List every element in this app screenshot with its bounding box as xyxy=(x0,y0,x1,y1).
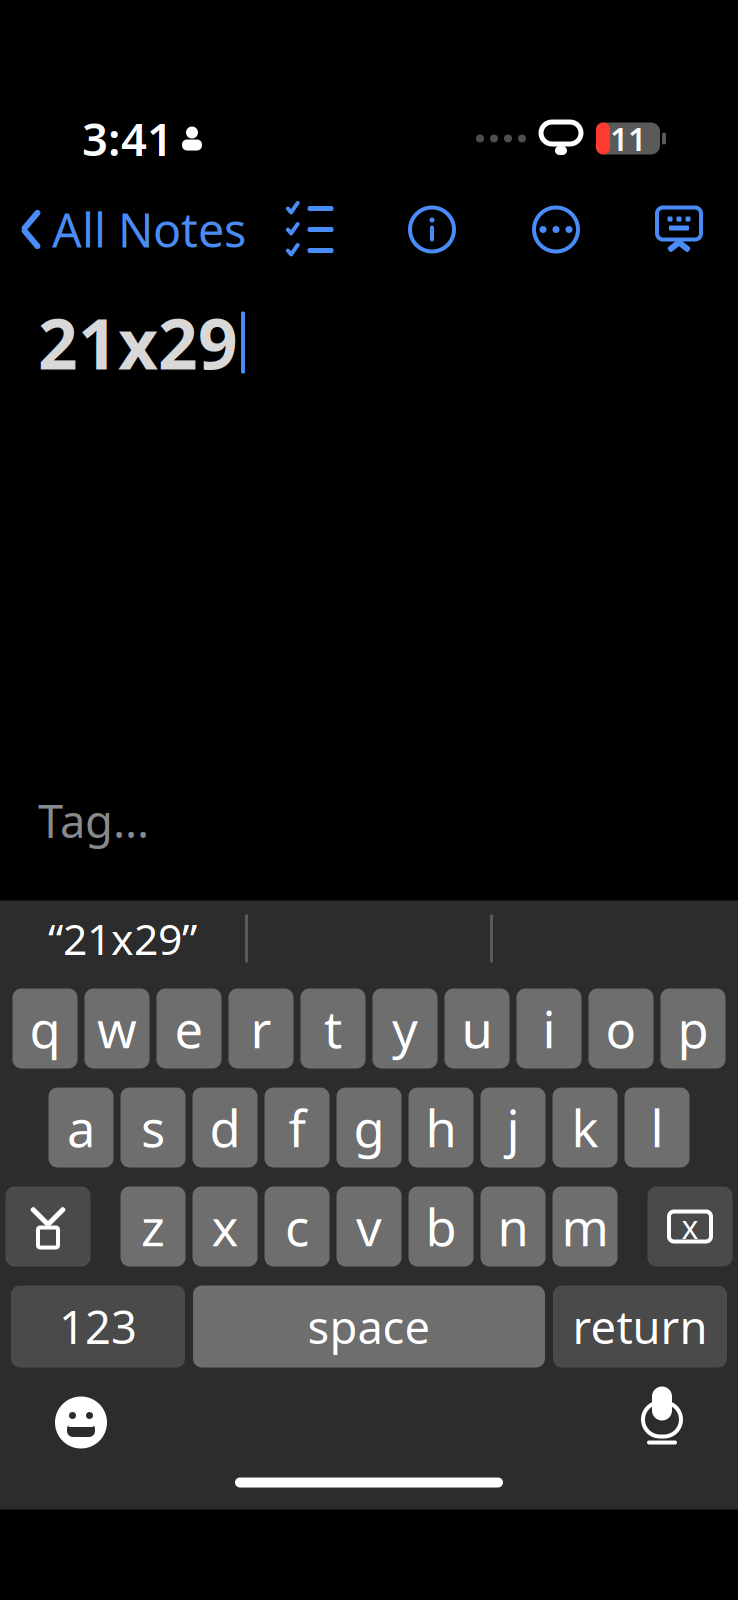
staticText: 3:41 xyxy=(82,108,173,169)
button[interactable]: f xyxy=(264,1087,329,1167)
staticText: 123 xyxy=(59,1296,137,1357)
staticText: space xyxy=(307,1296,430,1357)
staticText: w xyxy=(97,995,137,1062)
button[interactable]: Shift xyxy=(5,1186,90,1266)
button[interactable]: Checklist xyxy=(276,198,344,260)
button[interactable]: g xyxy=(336,1087,401,1167)
staticText: g xyxy=(353,1094,384,1161)
staticText: e xyxy=(174,995,203,1062)
button[interactable]: o xyxy=(588,988,653,1068)
staticText: i xyxy=(542,995,555,1062)
button[interactable]: i xyxy=(516,988,581,1068)
button[interactable]: s xyxy=(120,1087,185,1167)
staticText: z xyxy=(141,1193,165,1260)
staticText: t xyxy=(324,995,342,1062)
button[interactable]: y xyxy=(372,988,437,1068)
button[interactable]: All Notes xyxy=(0,188,246,270)
button[interactable]: l xyxy=(624,1087,689,1167)
button[interactable]: “21x29” xyxy=(0,902,245,974)
button[interactable]: k xyxy=(552,1087,617,1167)
staticText: p xyxy=(677,995,708,1062)
staticText: y xyxy=(392,995,418,1062)
staticText: n xyxy=(497,1193,528,1260)
button[interactable]: n xyxy=(480,1186,545,1266)
button[interactable]: v xyxy=(336,1186,401,1266)
staticText: x xyxy=(681,1205,698,1248)
staticText: d xyxy=(209,1094,240,1161)
button[interactable]: Delete xyxy=(647,1186,732,1266)
button[interactable]: t xyxy=(300,988,365,1068)
button[interactable]: Hide Keyboard xyxy=(644,194,714,264)
button[interactable]: h xyxy=(408,1087,473,1167)
button[interactable]: d xyxy=(192,1087,257,1167)
button[interactable]: j xyxy=(480,1087,545,1167)
staticText: v xyxy=(356,1193,382,1260)
button[interactable]: More xyxy=(520,193,592,265)
staticText: h xyxy=(425,1094,456,1161)
staticText: u xyxy=(461,995,492,1062)
staticText: All Notes xyxy=(52,198,246,260)
staticText: 21x29 xyxy=(38,296,238,389)
staticText: 11 xyxy=(610,117,646,160)
button[interactable]: u xyxy=(444,988,509,1068)
button[interactable]: z xyxy=(120,1186,185,1266)
staticText: Tag... xyxy=(38,790,149,850)
button[interactable]: Emoji xyxy=(40,1381,122,1463)
button[interactable]: b xyxy=(408,1186,473,1266)
button[interactable]: p xyxy=(660,988,725,1068)
staticText: m xyxy=(561,1193,608,1260)
staticText: return xyxy=(572,1296,707,1357)
staticText: r xyxy=(250,995,271,1062)
staticText: q xyxy=(29,995,60,1062)
button[interactable]: q xyxy=(12,988,77,1068)
staticText: o xyxy=(605,995,636,1062)
button[interactable]: e xyxy=(156,988,221,1068)
staticText: s xyxy=(141,1094,165,1161)
staticText: x xyxy=(211,1193,238,1260)
staticText: j xyxy=(506,1094,519,1161)
button[interactable]: m xyxy=(552,1186,617,1266)
staticText: “21x29” xyxy=(48,910,197,967)
staticText: l xyxy=(650,1094,663,1161)
button[interactable]: w xyxy=(84,988,149,1068)
button[interactable]: space xyxy=(193,1285,545,1367)
staticText: c xyxy=(285,1193,309,1260)
staticText: a xyxy=(67,1094,95,1161)
button[interactable]: 123 xyxy=(11,1285,185,1367)
button[interactable]: x xyxy=(192,1186,257,1266)
button[interactable]: return xyxy=(553,1285,727,1367)
button[interactable]: c xyxy=(264,1186,329,1266)
staticText: k xyxy=(571,1094,598,1161)
staticText: f xyxy=(288,1094,305,1161)
button[interactable]: Info xyxy=(396,193,468,265)
staticText: b xyxy=(425,1193,456,1260)
button[interactable]: a xyxy=(48,1087,113,1167)
button[interactable]: r xyxy=(228,988,293,1068)
button[interactable]: Dictation xyxy=(626,1381,698,1463)
